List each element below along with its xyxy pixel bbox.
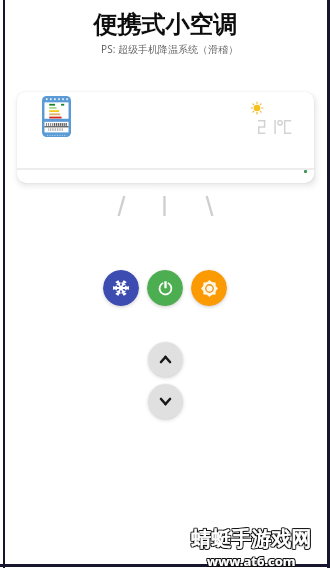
button[interactable]: Increase temperature	[148, 342, 183, 377]
staticText: 蜻蜓手游戏网	[190, 526, 310, 551]
button[interactable]: Power	[147, 270, 183, 306]
button[interactable]: Cool mode	[103, 270, 139, 306]
staticText: 蜻蜓手游戏网	[190, 527, 310, 552]
staticText: PS: 超级手机降温系统（滑稽）	[101, 42, 238, 56]
staticText: www.at6.com	[206, 552, 295, 568]
staticText: 蜻蜓手游戏网	[192, 527, 312, 552]
staticText: www.at6.com	[208, 552, 297, 568]
staticText: www.at6.com	[207, 552, 296, 568]
staticText: www.at6.com	[206, 553, 295, 568]
button[interactable]: Brightness	[191, 270, 227, 306]
staticText: www.at6.com	[208, 551, 297, 568]
button[interactable]: Decrease temperature	[148, 384, 183, 419]
staticText: 便携式小空调	[93, 10, 237, 40]
staticText: 蜻蜓手游戏网	[191, 527, 311, 552]
staticText: www.at6.com	[208, 553, 297, 568]
staticText: 蜻蜓手游戏网	[191, 526, 311, 551]
staticText: 蜻蜓手游戏网	[192, 526, 312, 551]
staticText: www.at6.com	[206, 551, 295, 568]
staticText: 蜻蜓手游戏网	[192, 528, 312, 553]
staticText: www.at6.com	[207, 553, 296, 568]
staticText: 蜻蜓手游戏网	[191, 528, 311, 553]
staticText: 蜻蜓手游戏网	[190, 528, 310, 553]
staticText: www.at6.com	[207, 551, 296, 568]
button[interactable]	[17, 92, 314, 183]
